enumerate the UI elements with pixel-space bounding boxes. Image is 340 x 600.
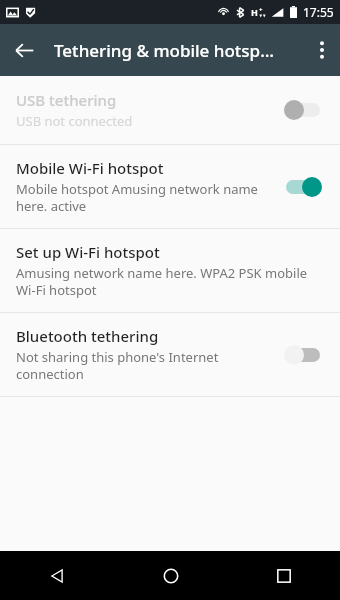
button[interactable]: More options: [304, 26, 340, 74]
staticText: Mobile Wi-Fi hotspot: [16, 158, 164, 178]
button[interactable]: Toggle on: [280, 173, 326, 201]
button[interactable]: Home: [114, 551, 227, 600]
button[interactable]: Mobile Wi-Fi hotspot: [0, 145, 340, 228]
staticText: H: [251, 6, 258, 18]
button[interactable]: Back: [0, 551, 114, 600]
staticText: Bluetooth tethering: [16, 326, 159, 346]
staticText: USB tethering: [16, 90, 117, 110]
button[interactable]: Toggle off: [280, 96, 326, 124]
button[interactable]: Set up Wi-Fi hotspot: [0, 229, 340, 312]
button[interactable]: Navigate up: [0, 26, 48, 74]
staticText: Tethering & mobile hotsp…: [54, 39, 304, 62]
staticText: 17:55: [303, 4, 334, 20]
staticText: Amusing network name here. WPA2 PSK mobi…: [16, 264, 316, 299]
button[interactable]: Bluetooth tethering: [0, 313, 340, 396]
button[interactable]: Toggle off: [280, 341, 326, 369]
button[interactable]: USB tethering: [0, 76, 340, 144]
staticText: +: [259, 6, 263, 14]
staticText: Not sharing this phone's Internet connec…: [16, 348, 270, 383]
button[interactable]: Recent apps: [227, 551, 340, 600]
staticText: Set up Wi-Fi hotspot: [16, 242, 160, 262]
staticText: USB not connected: [16, 112, 133, 130]
staticText: Mobile hotspot Amusing network name here…: [16, 180, 270, 215]
